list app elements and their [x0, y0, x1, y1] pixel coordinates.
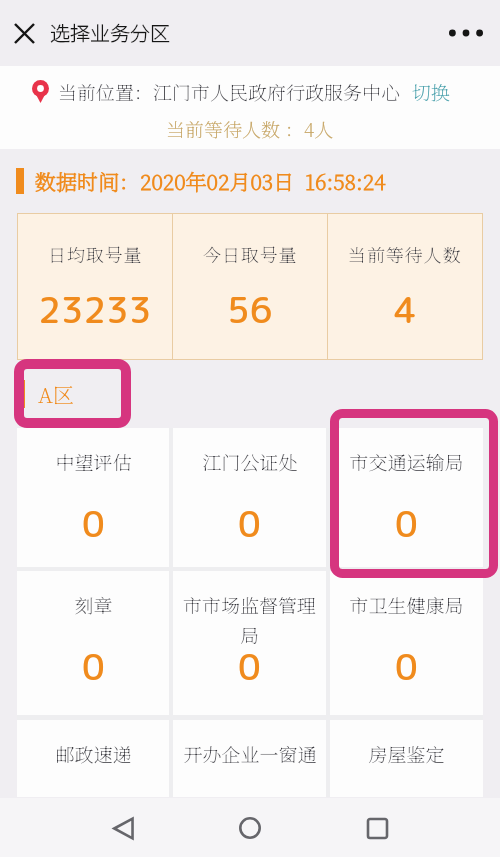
button[interactable]: Home — [226, 804, 274, 852]
staticText: 0 — [82, 641, 105, 691]
staticText: 日均取号量 — [48, 241, 143, 267]
staticText: 中望评估 — [55, 448, 132, 475]
staticText: 当前位置：江门市人民政府行政服务中心 — [58, 78, 401, 105]
staticText: 选择业务分区 — [50, 18, 170, 47]
staticText: 56 — [227, 284, 273, 334]
button[interactable]: 房屋鉴定 — [330, 720, 483, 797]
staticText: 今日取号量 — [203, 241, 298, 267]
staticText: 开办企业一窗通 — [183, 740, 317, 767]
staticText: 市市场监督管理局 — [175, 591, 324, 648]
button[interactable]: 开办企业一窗通 — [173, 720, 326, 797]
button[interactable]: Back — [99, 804, 147, 852]
staticText: 0 — [395, 641, 418, 691]
button[interactable]: 邮政速递 — [17, 720, 169, 797]
button[interactable]: 日均取号量 — [18, 214, 172, 359]
staticText: 江门公证处 — [202, 448, 298, 475]
button[interactable]: 刻章 — [17, 571, 169, 715]
button[interactable]: 中望评估 — [17, 428, 169, 567]
staticText: 当前等待人数 — [348, 241, 462, 267]
staticText: 23233 — [38, 284, 152, 334]
button[interactable]: Recent apps — [353, 804, 401, 852]
button[interactable]: 市市场监督管理局 — [173, 571, 326, 715]
staticText: 市交通运输局 — [349, 448, 464, 475]
staticText: 邮政速递 — [55, 740, 132, 767]
button[interactable]: 江门公证处 — [173, 428, 326, 567]
staticText: 房屋鉴定 — [368, 740, 445, 767]
staticText: A区 — [38, 379, 74, 409]
button[interactable]: 市卫生健康局 — [330, 571, 483, 715]
staticText: 0 — [82, 498, 105, 548]
staticText: 0 — [238, 641, 261, 691]
button[interactable]: More options — [440, 7, 492, 59]
staticText: 数据时间：2020年02月03日 16:58:24 — [35, 166, 386, 196]
button[interactable]: 切换 — [410, 72, 453, 111]
staticText: 市卫生健康局 — [349, 591, 464, 618]
button[interactable]: A区 — [22, 360, 140, 428]
staticText: 4 — [394, 284, 417, 334]
staticText: 当前等待人数 ：4人 — [166, 115, 334, 142]
button[interactable]: Close — [5, 14, 43, 52]
staticText: 0 — [238, 498, 261, 548]
button[interactable]: 今日取号量 — [173, 214, 327, 359]
staticText: 刻章 — [74, 591, 113, 618]
staticText: 切换 — [412, 78, 451, 105]
button[interactable]: 当前等待人数 — [328, 214, 482, 359]
staticText: 0 — [395, 498, 418, 548]
button[interactable]: 市交通运输局 — [330, 428, 483, 567]
